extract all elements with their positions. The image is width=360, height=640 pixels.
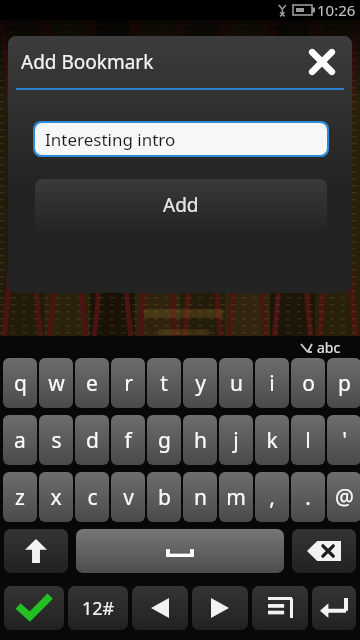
button[interactable]: . — [291, 472, 325, 522]
button[interactable]: j — [219, 415, 253, 465]
staticText: c — [87, 483, 98, 512]
button[interactable]: c — [75, 472, 109, 522]
staticText: l — [305, 426, 311, 455]
staticText: abc — [317, 338, 341, 357]
button[interactable]: d — [75, 415, 109, 465]
button[interactable]: Interesting intro — [33, 121, 329, 157]
button[interactable]: o — [291, 358, 325, 408]
button[interactable]: z — [3, 472, 37, 522]
staticText: u — [230, 369, 243, 398]
staticText: h — [194, 426, 207, 455]
staticText: d — [86, 426, 99, 455]
staticText: f — [124, 426, 132, 455]
staticText: Add Bookmark — [21, 49, 154, 75]
button[interactable]: w — [39, 358, 73, 408]
staticText: r — [124, 369, 133, 398]
staticText: 10:26 — [317, 0, 356, 20]
button[interactable]: f — [111, 415, 145, 465]
button[interactable]: v — [111, 472, 145, 522]
button[interactable]: l — [291, 415, 325, 465]
staticText: ' — [342, 426, 347, 455]
staticText: i — [269, 369, 275, 398]
button[interactable]: Add — [35, 179, 327, 231]
button[interactable]: Space — [76, 529, 284, 573]
button[interactable]: x — [39, 472, 73, 522]
staticText: n — [194, 483, 207, 512]
button[interactable]: a — [3, 415, 37, 465]
button[interactable]: y — [183, 358, 217, 408]
staticText: w — [48, 369, 65, 398]
button[interactable]: @ — [327, 472, 360, 522]
button[interactable]: Move right — [192, 586, 248, 630]
staticText: k — [266, 426, 278, 455]
button[interactable]: , — [255, 472, 289, 522]
staticText: 12# — [82, 596, 115, 621]
button[interactable]: Layout options — [252, 586, 308, 630]
staticText: g — [158, 426, 171, 455]
button[interactable]: h — [183, 415, 217, 465]
staticText: . — [305, 483, 311, 512]
staticText: z — [15, 483, 25, 512]
button[interactable]: Accept — [4, 586, 64, 630]
button[interactable]: b — [147, 472, 181, 522]
staticText: o — [302, 369, 315, 398]
button[interactable]: k — [255, 415, 289, 465]
staticText: e — [86, 369, 98, 398]
button[interactable]: ' — [327, 415, 360, 465]
button[interactable]: g — [147, 415, 181, 465]
staticText: t — [160, 369, 168, 398]
staticText: b — [158, 483, 171, 512]
button[interactable]: t — [147, 358, 181, 408]
button[interactable]: Close — [300, 40, 344, 84]
staticText: y — [195, 369, 206, 398]
button[interactable]: 12# — [68, 586, 128, 630]
button[interactable]: q — [3, 358, 37, 408]
button[interactable]: Enter — [312, 586, 356, 630]
staticText: Interesting intro — [45, 128, 176, 151]
staticText: a — [14, 426, 26, 455]
button[interactable]: Shift — [4, 529, 68, 573]
button[interactable]: Move left — [132, 586, 188, 630]
button[interactable]: Backspace — [292, 529, 356, 573]
staticText: Add — [163, 192, 199, 218]
staticText: @ — [335, 483, 354, 512]
staticText: q — [14, 369, 27, 398]
button[interactable]: i — [255, 358, 289, 408]
button[interactable]: m — [219, 472, 253, 522]
staticText: p — [338, 369, 351, 398]
staticText: s — [51, 426, 62, 455]
staticText: x — [50, 483, 62, 512]
button[interactable]: n — [183, 472, 217, 522]
button[interactable]: s — [39, 415, 73, 465]
staticText: , — [269, 483, 275, 512]
staticText: v — [123, 483, 134, 512]
button[interactable]: e — [75, 358, 109, 408]
staticText: j — [233, 426, 239, 455]
button[interactable]: r — [111, 358, 145, 408]
button[interactable]: u — [219, 358, 253, 408]
button[interactable]: p — [327, 358, 360, 408]
staticText: m — [226, 483, 246, 512]
